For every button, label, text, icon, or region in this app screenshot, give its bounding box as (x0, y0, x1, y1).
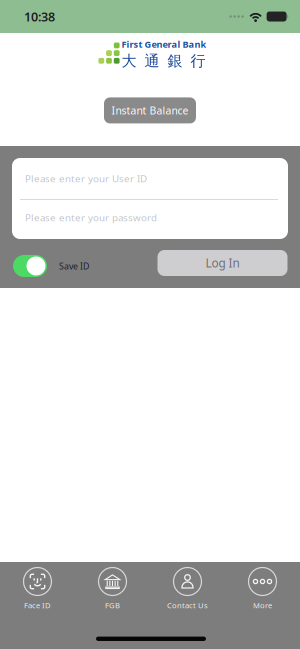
button[interactable]: Contact Us (150, 567, 225, 610)
button[interactable]: User ID (12, 158, 288, 199)
staticText: Please enter your password (25, 211, 157, 224)
button[interactable]: Log In (157, 250, 287, 276)
staticText: Contact Us (167, 600, 208, 610)
button[interactable]: FGB (75, 567, 150, 610)
staticText: Please enter your User ID (25, 172, 147, 185)
button[interactable]: Password (12, 200, 288, 239)
staticText: Log In (205, 255, 239, 271)
staticText: 大 通 銀 行 (122, 51, 206, 70)
staticText: More (253, 600, 272, 610)
button[interactable]: Save ID (13, 252, 47, 274)
staticText: Instant Balance (111, 103, 188, 117)
button[interactable]: More (225, 567, 300, 610)
staticText: First General Bank (122, 38, 207, 50)
button[interactable]: Instant Balance (104, 97, 196, 123)
staticText: Face ID (24, 600, 51, 610)
staticText: 10:38 (24, 8, 55, 25)
staticText: Save ID (59, 260, 89, 272)
staticText: FGB (105, 600, 120, 610)
button[interactable]: Face ID (0, 567, 75, 610)
